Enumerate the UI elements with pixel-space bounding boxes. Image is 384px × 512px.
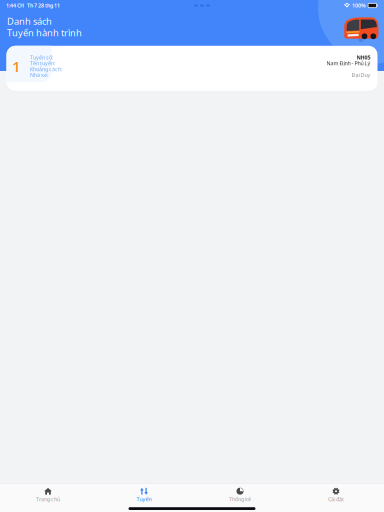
button[interactable]: Thống kê xyxy=(192,483,288,505)
staticText: Tuyến hành trình xyxy=(7,26,82,39)
staticText: Tuyến xyxy=(136,496,151,503)
staticText: Tuyến số: xyxy=(30,54,53,61)
button[interactable]: Cài đặt xyxy=(288,483,384,505)
staticText: NH05 xyxy=(356,54,370,61)
staticText: Tên tuyến: xyxy=(30,60,55,67)
button[interactable]: Tuyến xyxy=(96,483,192,505)
staticText: 1:44 CH Th 7 28 thg 11 xyxy=(6,2,60,9)
staticText: Thống kê xyxy=(229,496,251,503)
staticText: Nam Định - Phủ Lý xyxy=(326,60,370,67)
staticText: Danh sách xyxy=(7,15,52,27)
button[interactable]: 1 xyxy=(6,46,377,91)
staticText: Trang chủ xyxy=(36,496,60,503)
button[interactable]: Trang chủ xyxy=(0,483,96,505)
staticText: 1 xyxy=(12,57,20,76)
staticText: 100% xyxy=(352,2,366,9)
staticText: Nhà xe: xyxy=(30,71,48,79)
staticText: Cài đặt xyxy=(328,496,344,503)
staticText: Khoảng cách: xyxy=(30,66,62,73)
staticText: Đại Duy xyxy=(351,71,370,79)
